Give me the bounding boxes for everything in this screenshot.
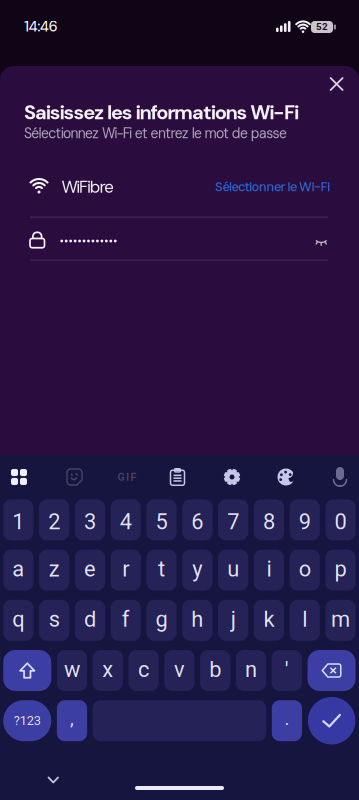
button[interactable]: v — [164, 650, 194, 691]
staticText: v — [174, 657, 185, 682]
button[interactable]: 4 — [111, 499, 141, 540]
button[interactable]: Ouvrir les fonctionnalités — [0, 459, 38, 495]
staticText: e — [84, 556, 96, 582]
staticText: h — [191, 606, 203, 632]
staticText: 5 — [155, 509, 167, 535]
button[interactable]: , — [57, 700, 87, 741]
staticText: Saisissez les informations Wi-Fi — [24, 99, 299, 125]
staticText: m — [331, 606, 350, 632]
button[interactable]: m — [325, 600, 356, 641]
button[interactable]: GIF — [108, 459, 146, 495]
staticText: ' — [285, 657, 289, 682]
staticText: 0 — [335, 509, 347, 535]
staticText: g — [155, 606, 167, 632]
staticText: 6 — [191, 509, 203, 535]
button[interactable]: q — [3, 600, 33, 641]
button[interactable]: f — [111, 600, 141, 641]
button[interactable]: 6 — [182, 499, 212, 540]
button[interactable]: z — [39, 550, 69, 591]
staticText: y — [192, 556, 202, 582]
staticText: , — [70, 708, 74, 730]
button[interactable]: i — [254, 550, 284, 591]
staticText: n — [245, 657, 257, 682]
staticText: 52 — [316, 21, 328, 32]
button[interactable]: y — [182, 550, 212, 591]
button[interactable]: a — [3, 550, 33, 591]
staticText: c — [138, 657, 149, 682]
button[interactable]: k — [254, 600, 284, 641]
button[interactable]: ' — [272, 650, 302, 691]
staticText: 8 — [263, 509, 275, 535]
button[interactable]: p — [325, 550, 356, 591]
button[interactable]: 2 — [39, 499, 69, 540]
button[interactable]: j — [218, 600, 248, 641]
staticText: f — [122, 606, 130, 632]
button[interactable]: n — [236, 650, 266, 691]
staticText: 2 — [48, 509, 60, 535]
button[interactable]: 8 — [254, 499, 284, 540]
button[interactable]: Thèmes — [267, 459, 305, 495]
button[interactable]: 1 — [3, 499, 33, 540]
staticText: 14:46 — [24, 17, 57, 36]
button[interactable]: Maj — [3, 650, 51, 691]
staticText: o — [299, 556, 311, 582]
staticText: w — [64, 657, 80, 682]
button[interactable]: u — [218, 550, 248, 591]
button[interactable]: h — [182, 600, 212, 641]
staticText: x — [102, 657, 113, 682]
staticText: 7 — [227, 509, 239, 535]
button[interactable]: t — [146, 550, 177, 591]
staticText: a — [12, 556, 24, 582]
staticText: r — [122, 556, 129, 582]
button[interactable]: d — [75, 600, 105, 641]
staticText: 1 — [12, 509, 24, 535]
button[interactable]: w — [57, 650, 87, 691]
button[interactable]: Supprimer — [307, 650, 355, 691]
button[interactable]: Saisie vocale — [321, 459, 359, 495]
button[interactable]: OK — [308, 700, 356, 741]
button[interactable]: Sélectionner le Wi-Fi — [215, 179, 330, 195]
button[interactable]: 0 — [325, 499, 356, 540]
staticText: 9 — [299, 509, 311, 535]
staticText: 3 — [84, 509, 96, 535]
staticText: ?123 — [14, 713, 41, 728]
staticText: Sélectionnez Wi-Fi et entrez le mot de p… — [24, 124, 287, 143]
button[interactable]: g — [146, 600, 177, 641]
button[interactable]: 7 — [218, 499, 248, 540]
staticText: l — [302, 606, 307, 632]
staticText: q — [12, 606, 24, 632]
button[interactable]: Masquer le clavier — [42, 771, 64, 788]
staticText: d — [84, 606, 96, 632]
button[interactable]: 5 — [146, 499, 177, 540]
button[interactable]: . — [272, 700, 302, 741]
button[interactable]: Symboles — [3, 700, 51, 741]
button[interactable]: r — [111, 550, 141, 591]
button[interactable]: Fermer — [323, 70, 351, 98]
button[interactable]: s — [39, 600, 69, 641]
staticText: Sélectionner le Wi-Fi — [215, 179, 330, 195]
button[interactable]: e — [75, 550, 105, 591]
staticText: j — [231, 606, 236, 632]
staticText: z — [49, 556, 60, 582]
button[interactable]: Presse-papiers — [158, 459, 196, 495]
button[interactable]: o — [290, 550, 320, 591]
staticText: WiFibre — [61, 176, 114, 198]
staticText: GIF — [117, 471, 137, 483]
button[interactable]: b — [200, 650, 230, 691]
staticText: i — [266, 556, 271, 582]
button[interactable]: 9 — [290, 499, 320, 540]
button[interactable]: x — [93, 650, 123, 691]
button[interactable]: Afficher le mot de passe — [312, 231, 330, 249]
staticText: u — [227, 556, 239, 582]
staticText: 4 — [120, 509, 132, 535]
button[interactable]: Émojis — [55, 459, 93, 495]
button[interactable]: c — [128, 650, 159, 691]
button[interactable]: Paramètres — [213, 459, 251, 495]
staticText: p — [335, 556, 347, 582]
staticText: s — [49, 606, 60, 632]
staticText: k — [263, 606, 274, 632]
button[interactable]: 3 — [75, 499, 105, 540]
staticText: b — [209, 657, 221, 682]
button[interactable]: l — [290, 600, 320, 641]
